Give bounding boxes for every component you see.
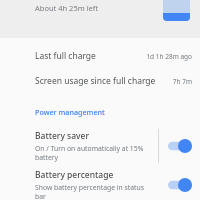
staticText: 7h 7m — [172, 77, 192, 86]
staticText: 1d 1h 28m ago — [146, 52, 192, 61]
button[interactable]: Battery percentage — [0, 168, 200, 200]
button[interactable]: Battery percentage toggle — [166, 175, 194, 195]
staticText: Battery saver — [35, 130, 90, 142]
staticText: Power management — [35, 107, 105, 117]
button[interactable]: Screen usage since full charge — [0, 69, 200, 93]
staticText: On / Turn on automatically at 15% batter… — [35, 144, 152, 162]
staticText: Screen usage since full charge — [35, 75, 156, 87]
button[interactable]: Last full charge — [0, 44, 200, 68]
staticText: About 4h 25m left — [35, 3, 99, 13]
staticText: Last full charge — [35, 50, 96, 62]
button[interactable]: Battery saver toggle — [166, 136, 194, 156]
staticText: Show battery percentage in status bar — [35, 183, 152, 200]
staticText: Battery percentage — [35, 169, 114, 181]
button[interactable]: Battery saver — [0, 124, 200, 168]
